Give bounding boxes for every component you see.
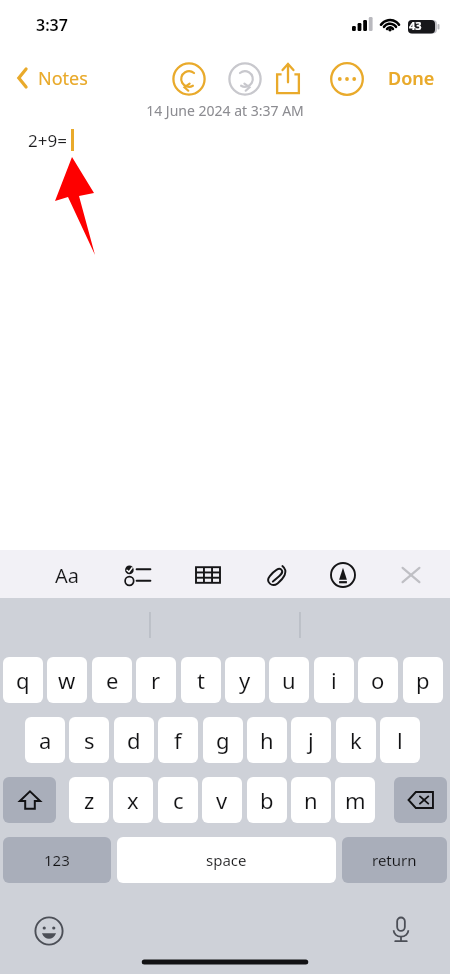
staticText: r: [151, 665, 161, 695]
button[interactable]: l: [380, 717, 420, 763]
button[interactable]: Checklist: [124, 560, 154, 590]
staticText: u: [282, 665, 296, 695]
button[interactable]: s: [69, 717, 109, 763]
button[interactable]: Done: [378, 58, 444, 98]
button[interactable]: x: [113, 777, 153, 823]
button[interactable]: Format: [52, 560, 82, 590]
button[interactable]: Shift: [3, 777, 56, 823]
button[interactable]: a: [25, 717, 65, 763]
button[interactable]: p: [403, 657, 443, 703]
staticText: g: [216, 725, 230, 755]
staticText: 43: [409, 18, 422, 33]
button[interactable]: n: [291, 777, 331, 823]
button[interactable]: Share: [272, 60, 304, 96]
button[interactable]: Table: [193, 560, 223, 590]
staticText: Notes: [38, 66, 88, 91]
button[interactable]: Close: [396, 560, 426, 590]
staticText: 123: [44, 850, 70, 870]
staticText: space: [206, 850, 247, 870]
staticText: t: [197, 665, 205, 695]
staticText: l: [397, 725, 403, 755]
button[interactable]: y: [225, 657, 265, 703]
button[interactable]: i: [314, 657, 354, 703]
button[interactable]: r: [136, 657, 176, 703]
staticText: o: [371, 665, 385, 695]
button[interactable]: o: [358, 657, 398, 703]
staticText: q: [16, 665, 30, 695]
staticText: x: [127, 785, 139, 815]
button[interactable]: Notes: [6, 58, 106, 98]
staticText: p: [416, 665, 430, 695]
button[interactable]: t: [181, 657, 221, 703]
button[interactable]: Redo: [228, 62, 262, 96]
staticText: j: [308, 725, 314, 755]
button[interactable]: m: [335, 777, 375, 823]
staticText: n: [304, 785, 318, 815]
staticText: d: [127, 725, 141, 755]
button[interactable]: b: [247, 777, 287, 823]
button[interactable]: q: [3, 657, 43, 703]
staticText: c: [173, 785, 184, 815]
staticText: 14 June 2024 at 3:37 AM: [0, 101, 450, 120]
staticText: Done: [388, 66, 435, 91]
staticText: f: [174, 725, 182, 755]
button[interactable]: Undo: [172, 62, 206, 96]
button[interactable]: e: [92, 657, 132, 703]
staticText: a: [39, 725, 52, 755]
button[interactable]: u: [269, 657, 309, 703]
button[interactable]: c: [158, 777, 198, 823]
button[interactable]: v: [202, 777, 242, 823]
staticText: h: [260, 725, 274, 755]
button[interactable]: z: [69, 777, 109, 823]
staticText: v: [216, 785, 228, 815]
staticText: 3:37: [36, 14, 68, 36]
button[interactable]: Dictate: [385, 913, 417, 945]
staticText: y: [239, 665, 251, 695]
button[interactable]: Markup: [328, 560, 358, 590]
staticText: z: [84, 785, 95, 815]
button[interactable]: d: [114, 717, 154, 763]
button[interactable]: w: [47, 657, 87, 703]
staticText: e: [106, 665, 119, 695]
button[interactable]: g: [203, 717, 243, 763]
staticText: s: [84, 725, 95, 755]
staticText: m: [345, 785, 366, 815]
button[interactable]: h: [247, 717, 287, 763]
button[interactable]: Attach: [262, 560, 292, 590]
staticText: i: [331, 665, 337, 695]
staticText: return: [372, 850, 417, 870]
button[interactable]: return: [342, 837, 447, 883]
staticText: w: [58, 665, 76, 695]
button[interactable]: space: [117, 837, 336, 883]
staticText: k: [350, 725, 362, 755]
button[interactable]: f: [158, 717, 198, 763]
button[interactable]: Emoji: [33, 915, 65, 947]
button[interactable]: Backspace: [394, 777, 447, 823]
staticText: 2+9=: [28, 129, 67, 152]
button[interactable]: k: [336, 717, 376, 763]
button[interactable]: j: [291, 717, 331, 763]
staticText: Aa: [55, 562, 79, 589]
button[interactable]: 123: [3, 837, 111, 883]
button[interactable]: More: [330, 62, 364, 96]
staticText: b: [260, 785, 274, 815]
